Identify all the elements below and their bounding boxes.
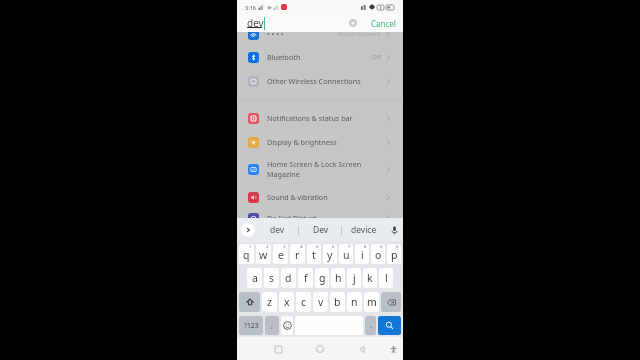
button[interactable]: Cancel xyxy=(371,15,397,31)
staticText: 8 xyxy=(364,244,367,250)
staticText: u xyxy=(343,248,350,262)
staticText: Notifications & status bar xyxy=(267,113,385,123)
staticText: dev xyxy=(270,224,285,236)
staticText: b xyxy=(334,295,341,309)
button[interactable]: a xyxy=(247,268,262,288)
button[interactable]: h xyxy=(331,268,345,288)
staticText: dev xyxy=(247,16,264,30)
staticText: device xyxy=(351,224,377,236)
staticText: s xyxy=(269,271,275,285)
staticText: Bluetooth xyxy=(267,52,372,62)
staticText: c xyxy=(301,295,307,309)
button[interactable]: b xyxy=(330,292,345,312)
button[interactable]: • • • • xyxy=(237,28,403,40)
staticText: v xyxy=(318,295,324,309)
button[interactable]: Voice input xyxy=(385,218,403,242)
button[interactable]: u xyxy=(339,244,353,264)
staticText: r xyxy=(295,248,300,262)
button[interactable]: Display & brightness xyxy=(237,136,403,148)
button[interactable]: Home Screen & Lock Screen Magazine xyxy=(237,158,403,180)
staticText: 9 xyxy=(380,244,383,250)
button[interactable]: g xyxy=(315,268,329,288)
button[interactable]: Dev xyxy=(299,218,342,242)
staticText: Other Wireless Connections xyxy=(267,76,385,86)
button[interactable]: i xyxy=(355,244,369,264)
button[interactable]: y xyxy=(323,244,337,264)
staticText: 2 xyxy=(266,244,269,250)
button[interactable]: Accessibility xyxy=(385,341,401,357)
staticText: Display & brightness xyxy=(267,137,385,147)
staticText: Home Network xyxy=(338,30,381,38)
button[interactable]: Other Wireless Connections xyxy=(237,75,403,87)
button[interactable]: Shift xyxy=(239,292,260,312)
staticText: Off xyxy=(372,53,381,61)
button[interactable]: c xyxy=(296,292,311,312)
staticText: x xyxy=(284,295,290,309)
staticText: l xyxy=(385,271,388,285)
button[interactable]: k xyxy=(363,268,377,288)
button[interactable]: x xyxy=(279,292,294,312)
staticText: e xyxy=(278,248,284,262)
button[interactable]: Sound & vibration xyxy=(237,191,403,203)
button[interactable]: l xyxy=(379,268,393,288)
staticText: Dev xyxy=(313,224,329,236)
button[interactable]: d xyxy=(281,268,296,288)
button[interactable]: Search xyxy=(378,316,401,335)
button[interactable]: Notifications & status bar xyxy=(237,112,403,124)
button[interactable]: v xyxy=(313,292,328,312)
staticText: t xyxy=(312,248,316,262)
staticText: 5 xyxy=(316,244,319,250)
staticText: 3 xyxy=(283,244,286,250)
button[interactable]: o xyxy=(371,244,385,264)
staticText: 6 xyxy=(332,244,335,250)
staticText: 7 xyxy=(348,244,351,250)
button[interactable]: Home xyxy=(312,341,328,357)
staticText: h xyxy=(335,271,342,285)
button[interactable]: Backspace xyxy=(381,292,401,312)
button[interactable]: q xyxy=(239,244,254,264)
staticText: w xyxy=(259,248,268,262)
button[interactable]: z xyxy=(262,292,277,312)
staticText: Home Screen & Lock Screen Magazine xyxy=(267,159,385,179)
button[interactable]: Back xyxy=(354,341,370,357)
staticText: i xyxy=(361,248,364,262)
button[interactable]: , xyxy=(265,316,279,335)
button[interactable]: f xyxy=(298,268,313,288)
button[interactable]: More suggestions xyxy=(241,223,255,237)
staticText: g xyxy=(319,271,326,285)
button[interactable]: device xyxy=(342,218,385,242)
staticText: , xyxy=(271,321,273,331)
button[interactable]: Clear search xyxy=(347,17,359,29)
button[interactable]: Do Not Disturb xyxy=(237,212,403,224)
staticText: f xyxy=(304,271,308,285)
button[interactable]: . xyxy=(365,316,376,335)
button[interactable]: Bluetooth xyxy=(237,51,403,63)
button[interactable]: p xyxy=(387,244,401,264)
button[interactable]: e xyxy=(273,244,288,264)
staticText: ?123 xyxy=(244,321,259,330)
button[interactable]: Recents xyxy=(270,341,286,357)
staticText: m xyxy=(367,295,377,309)
button[interactable]: m xyxy=(364,292,379,312)
button[interactable]: Emoji xyxy=(281,316,293,335)
staticText: z xyxy=(267,295,272,309)
button[interactable]: t xyxy=(307,244,321,264)
staticText: k xyxy=(367,271,373,285)
staticText: 0 xyxy=(396,244,399,250)
staticText: 1 xyxy=(249,244,252,250)
staticText: p xyxy=(391,248,398,262)
staticText: 4 xyxy=(300,244,303,250)
staticText: Do Not Disturb xyxy=(267,213,385,223)
staticText: Cancel xyxy=(371,18,396,29)
button[interactable]: w xyxy=(256,244,271,264)
staticText: j xyxy=(353,271,356,285)
button[interactable]: n xyxy=(347,292,362,312)
button[interactable]: j xyxy=(347,268,361,288)
button[interactable]: dev xyxy=(255,218,299,242)
staticText: q xyxy=(243,248,250,262)
staticText: n xyxy=(351,295,358,309)
button[interactable]: r xyxy=(290,244,305,264)
button[interactable]: s xyxy=(264,268,279,288)
button[interactable]: ?123 xyxy=(239,316,263,335)
